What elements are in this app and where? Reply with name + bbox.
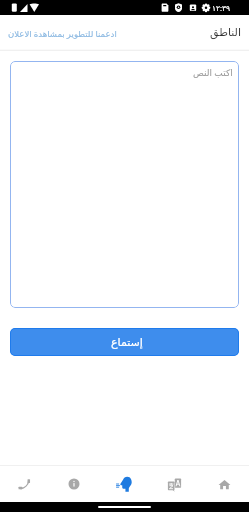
button[interactable]: Info (49, 466, 99, 502)
button[interactable]: اكتب النص (10, 61, 239, 308)
staticText: اكتب النص (193, 66, 233, 78)
staticText: إستماع (111, 336, 143, 349)
button[interactable]: Call (0, 466, 49, 502)
staticText: الناطق (210, 26, 242, 39)
button[interactable]: Translate (149, 466, 199, 502)
button[interactable]: Home (199, 466, 249, 502)
button[interactable]: إستماع (10, 328, 239, 356)
staticText: ادعمنا للتطوير بمشاهدة الاعلان (8, 28, 117, 40)
staticText: ١٢:٣٩ (212, 3, 231, 13)
button[interactable]: Text to speech (99, 466, 149, 502)
